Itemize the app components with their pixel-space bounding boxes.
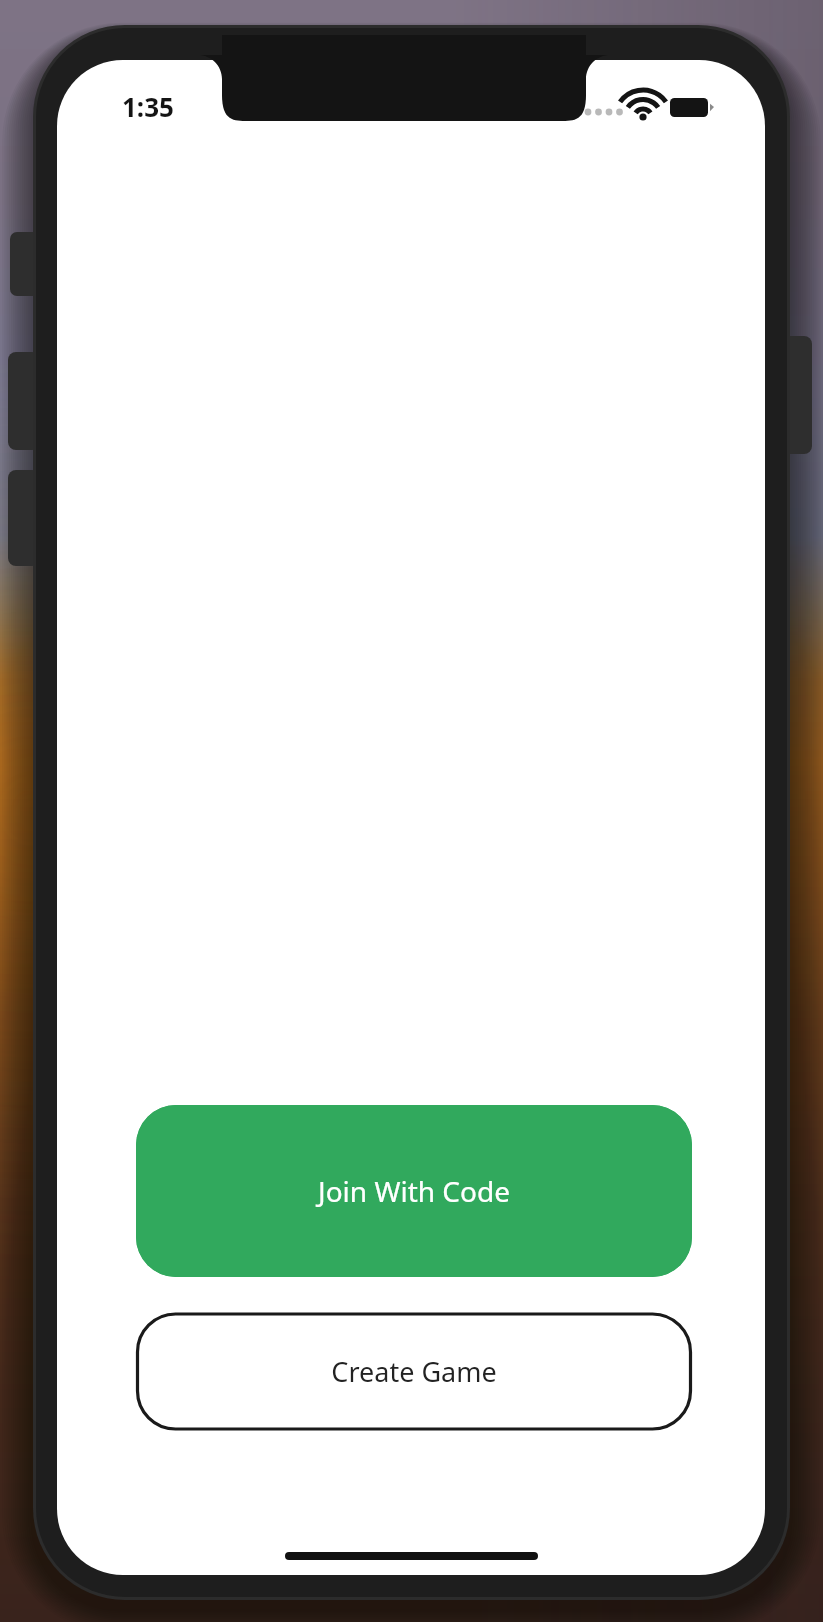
- staticText: Join With Code: [318, 1172, 510, 1210]
- staticText: Create Game: [331, 1353, 497, 1390]
- staticText: 1:35: [122, 89, 174, 123]
- button[interactable]: Join With Code: [136, 1105, 692, 1277]
- button[interactable]: Create Game: [136, 1313, 692, 1430]
